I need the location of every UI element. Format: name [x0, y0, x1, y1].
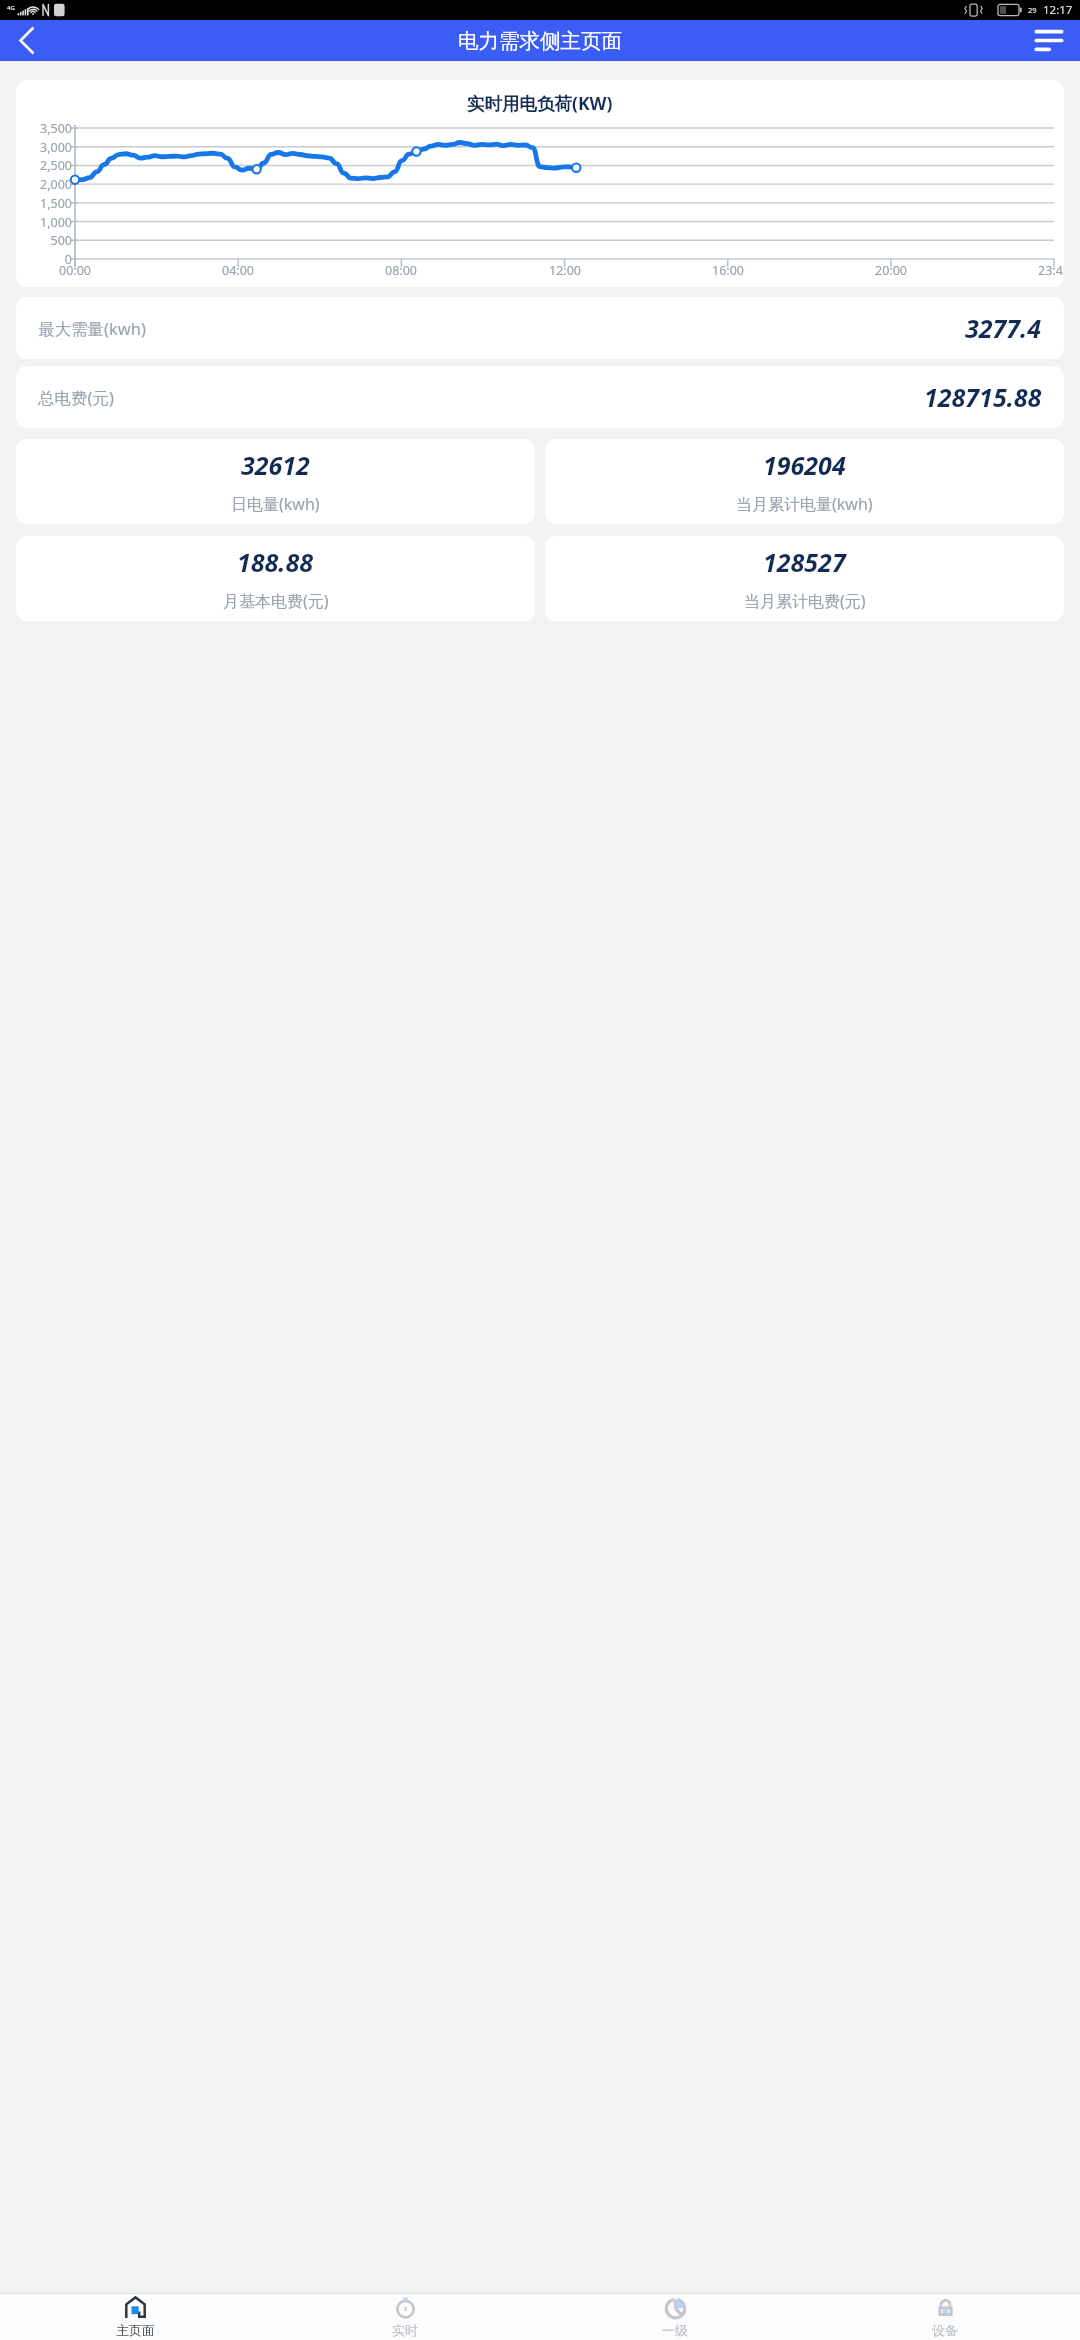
button[interactable]: 128527 — [545, 536, 1064, 621]
button[interactable]: Home — [0, 2294, 270, 2340]
button[interactable]: 最大需量(kwh) — [16, 297, 1064, 359]
staticText: 08:00 — [385, 262, 417, 279]
staticText: 电力需求侧主页面 — [458, 28, 622, 54]
button[interactable]: 实时用电负荷(KW) — [16, 80, 1064, 287]
button[interactable]: Back — [5, 20, 49, 61]
staticText: 12:00 — [549, 262, 581, 279]
staticText: 20:00 — [875, 262, 907, 279]
staticText: 主页面 — [116, 2322, 155, 2338]
staticText: 3,000 — [40, 139, 72, 155]
button[interactable]: 32612 — [16, 439, 535, 524]
staticText: 12:17 — [1043, 2, 1073, 18]
staticText: 128715.88 — [924, 380, 1042, 414]
staticText: 00:00 — [59, 262, 91, 279]
staticText: 3277.4 — [965, 311, 1042, 345]
staticText: 当月累计电量(kwh) — [736, 493, 873, 515]
staticText: 实时用电负荷(KW) — [467, 91, 613, 115]
staticText: 1,000 — [40, 214, 72, 230]
button[interactable]: Devices — [810, 2294, 1080, 2340]
button[interactable]: 总电费(元) — [16, 366, 1064, 428]
staticText: 04:00 — [222, 262, 254, 279]
staticText: 16:00 — [712, 262, 744, 279]
staticText: 当月累计电费(元) — [744, 590, 866, 612]
staticText: 3,500 — [40, 120, 72, 136]
staticText: 2,000 — [40, 176, 72, 192]
staticText: 一级 — [662, 2322, 688, 2338]
button[interactable]: Menu — [1027, 20, 1071, 61]
staticText: 32612 — [241, 448, 310, 482]
staticText: 196204 — [763, 448, 846, 482]
staticText: 总电费(元) — [38, 386, 114, 409]
staticText: 0 — [64, 251, 72, 267]
staticText: 128527 — [763, 545, 846, 579]
button[interactable]: 188.88 — [16, 536, 535, 621]
staticText: 实时 — [392, 2322, 418, 2338]
staticText: 1,500 — [40, 195, 72, 211]
staticText: 设备 — [932, 2322, 958, 2338]
staticText: 月基本电费(元) — [223, 590, 329, 612]
button[interactable]: Level one — [540, 2294, 810, 2340]
staticText: 188.88 — [237, 545, 314, 579]
button[interactable]: Realtime — [270, 2294, 540, 2340]
staticText: 500 — [50, 232, 72, 248]
button[interactable]: 196204 — [545, 439, 1064, 524]
staticText: 最大需量(kwh) — [38, 317, 146, 340]
staticText: 日电量(kwh) — [231, 493, 320, 515]
staticText: 23:45 — [1038, 262, 1064, 279]
staticText: 29 — [1028, 5, 1037, 15]
staticText: 4G — [7, 4, 15, 12]
staticText: 2,500 — [40, 157, 72, 173]
